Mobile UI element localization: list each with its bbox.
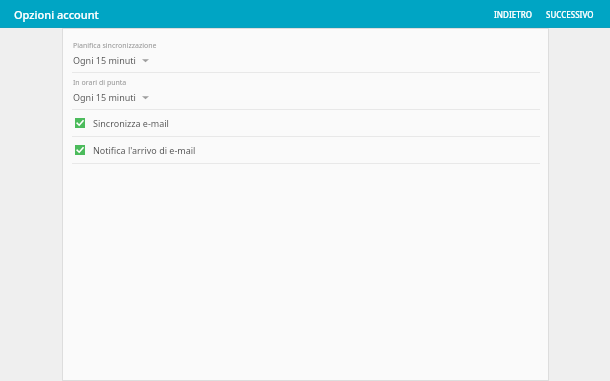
button[interactable]: Notifica l'arrivo di e-mail xyxy=(62,137,549,163)
staticText: SUCCESSIVO xyxy=(546,9,594,20)
staticText: INDIETRO xyxy=(494,9,532,20)
button[interactable]: Sincronizza e-mail xyxy=(62,110,549,136)
staticText: Opzioni account xyxy=(14,7,99,22)
button[interactable]: In orari di punta xyxy=(62,73,549,109)
button[interactable]: INDIETRO xyxy=(490,5,536,24)
staticText: Notifica l'arrivo di e-mail xyxy=(93,144,196,156)
staticText: Ogni 15 minuti xyxy=(73,91,136,103)
staticText: Sincronizza e-mail xyxy=(93,117,169,129)
staticText: In orari di punta xyxy=(73,78,127,88)
staticText: Ogni 15 minuti xyxy=(73,54,136,66)
button[interactable]: Pianifica sincronizzazione xyxy=(62,36,549,72)
button[interactable]: SUCCESSIVO xyxy=(542,5,598,24)
staticText: Pianifica sincronizzazione xyxy=(73,41,157,51)
